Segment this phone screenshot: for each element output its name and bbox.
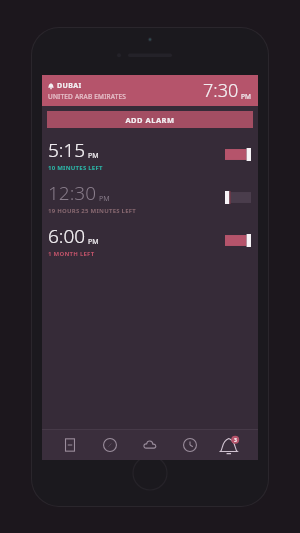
button[interactable]: DUBAI <box>42 75 258 106</box>
staticText: PM <box>99 194 110 204</box>
button[interactable]: 12:30 <box>42 176 258 219</box>
staticText: 12:30 <box>48 180 97 206</box>
staticText: 6:00 <box>48 223 86 249</box>
button[interactable]: ADD ALARM <box>47 111 253 128</box>
staticText: UNITED ARAB EMIRATES <box>48 92 127 101</box>
button[interactable]: 5:15 <box>42 133 258 176</box>
button[interactable]: Alarm off <box>225 191 251 204</box>
button[interactable]: Alarm on <box>225 234 251 247</box>
staticText: 1 MONTH LEFT <box>48 250 95 258</box>
staticText: 5:15 <box>48 137 86 163</box>
staticText: DUBAI <box>57 81 82 91</box>
button[interactable]: Weather <box>140 435 160 455</box>
staticText: PM <box>88 237 99 247</box>
staticText: PM <box>241 92 251 101</box>
button[interactable]: Alarms, 3 notifications <box>220 435 240 455</box>
button[interactable]: Clock <box>180 435 200 455</box>
staticText: PM <box>88 151 99 161</box>
staticText: 3 <box>234 437 237 444</box>
button[interactable]: Cards <box>60 435 80 455</box>
staticText: 19 HOURS 25 MINUTES LEFT <box>48 207 137 215</box>
staticText: 10 MINUTES LEFT <box>48 164 103 172</box>
staticText: 7:30 <box>203 78 239 103</box>
button[interactable]: Alarm on <box>225 148 251 161</box>
button[interactable]: 6:00 <box>42 219 258 262</box>
staticText: ADD ALARM <box>125 115 175 125</box>
button[interactable]: Compass <box>100 435 120 455</box>
